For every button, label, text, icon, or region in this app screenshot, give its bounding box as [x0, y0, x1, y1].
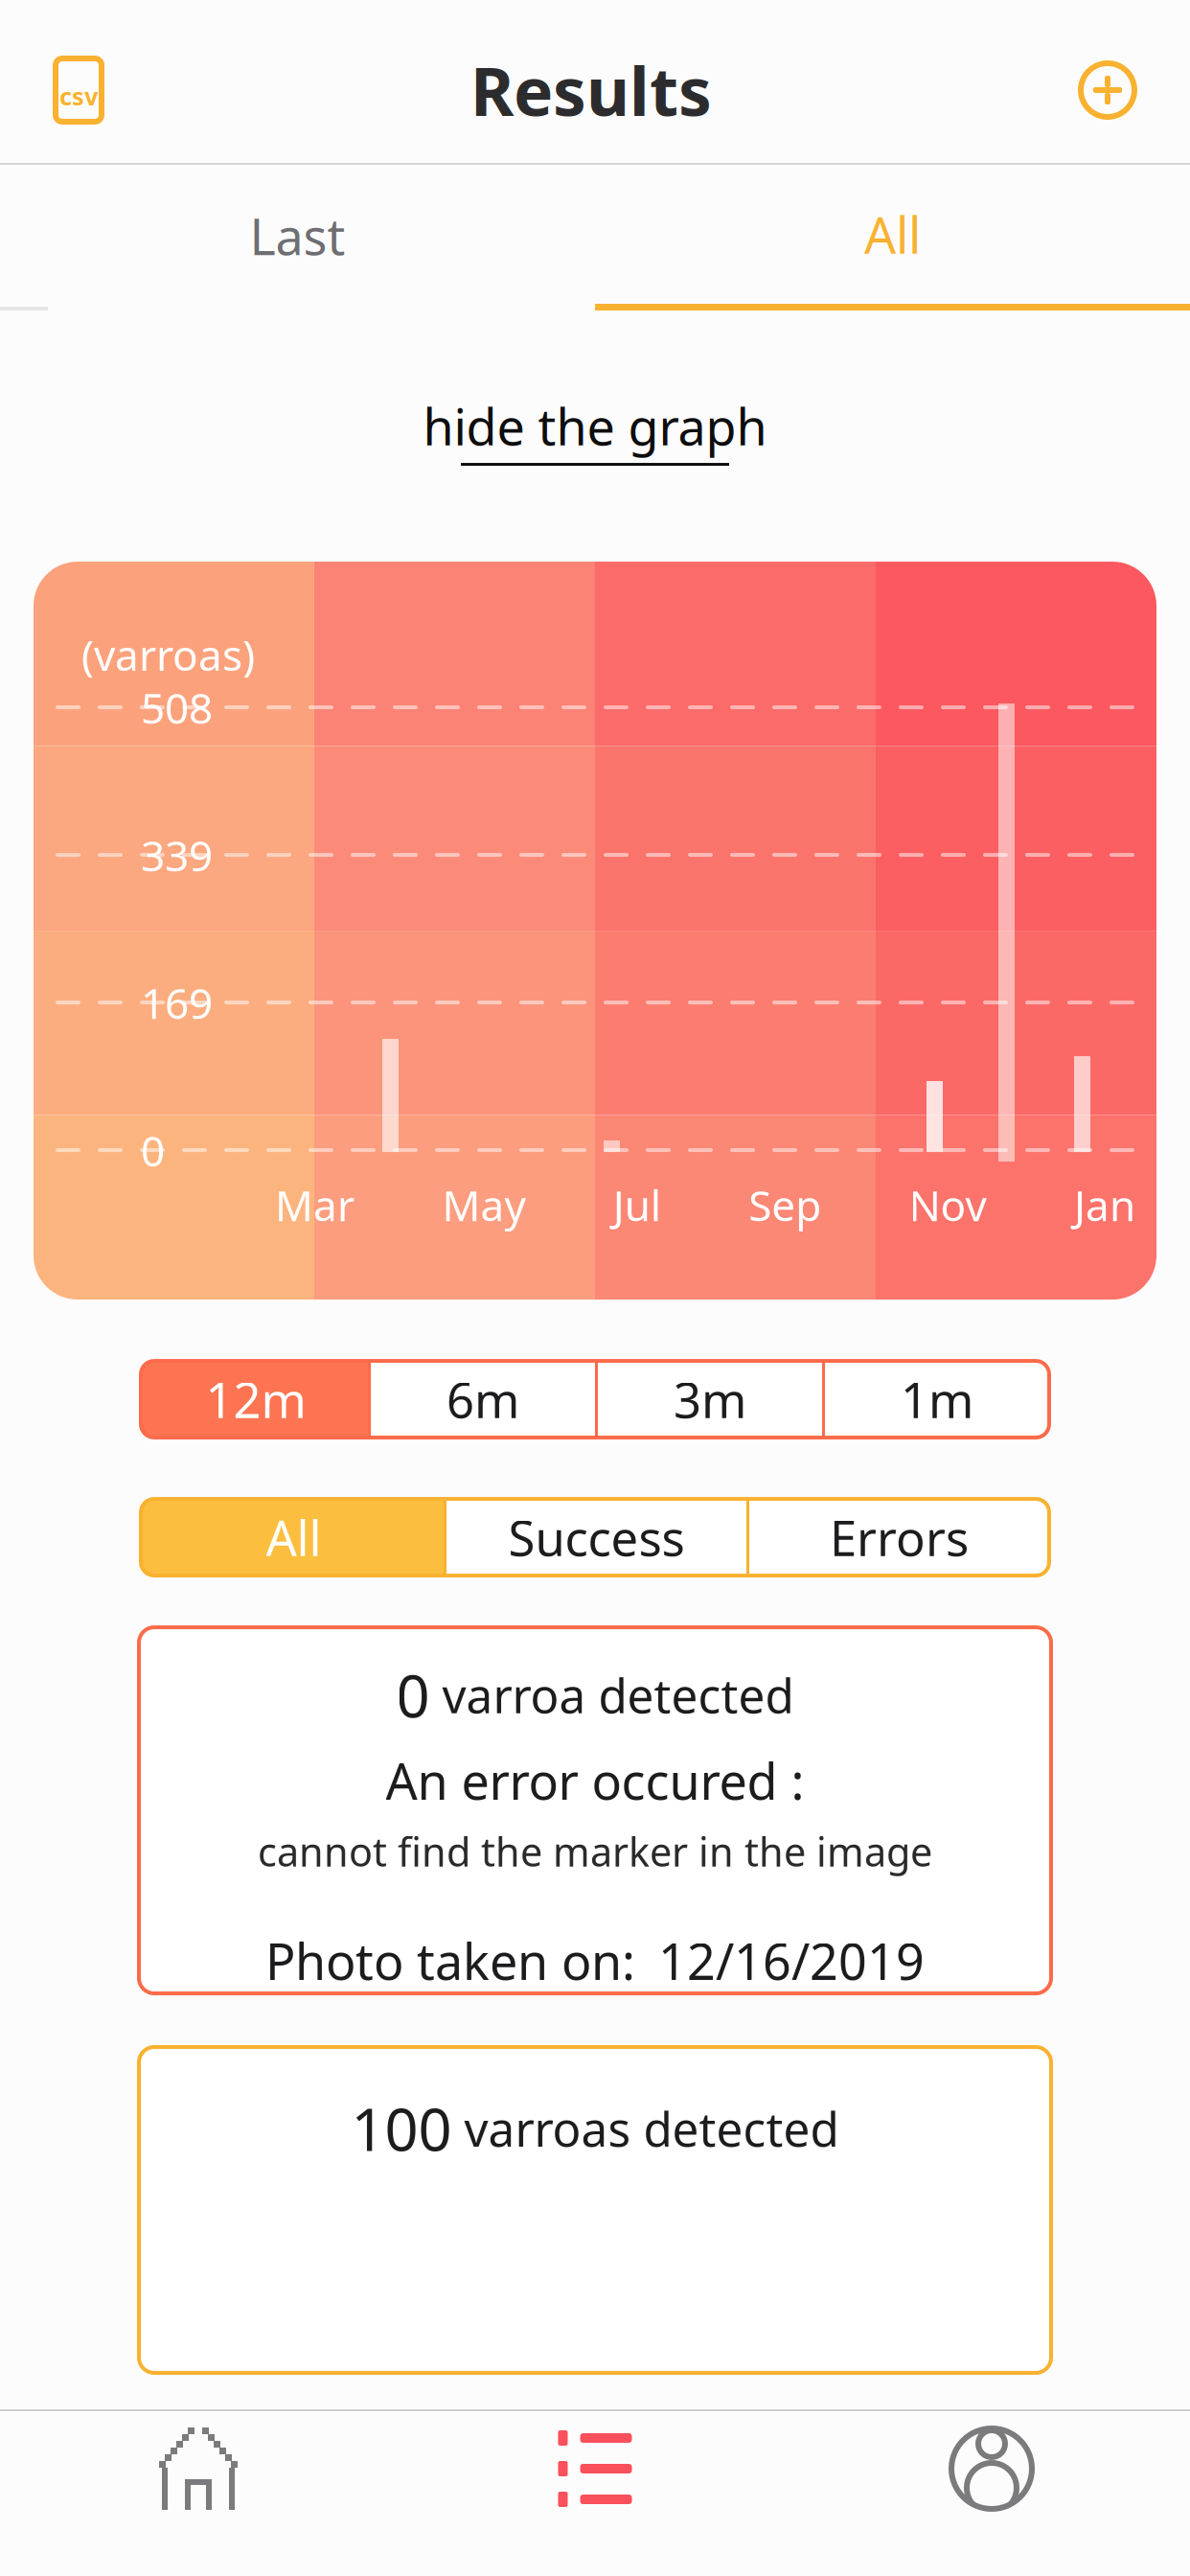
button[interactable]: Add result [1067, 52, 1148, 128]
staticText: Mar [275, 1177, 355, 1233]
button[interactable]: Errors [746, 1499, 1049, 1576]
button[interactable]: 1m [822, 1361, 1049, 1438]
staticText: 0 [141, 1122, 165, 1178]
staticText: 100 [351, 2089, 452, 2167]
staticText: All [864, 201, 921, 267]
button[interactable]: Success [444, 1499, 746, 1576]
staticText: 169 [141, 974, 213, 1030]
button[interactable]: Results [397, 2411, 793, 2526]
button[interactable]: 12m [141, 1361, 368, 1438]
staticText: hide the graph [423, 393, 767, 459]
staticText: 1m [901, 1367, 973, 1431]
button[interactable]: 6m [368, 1361, 595, 1438]
button[interactable]: 0 [139, 1627, 1051, 1993]
button[interactable]: hide the graph [412, 385, 778, 474]
staticText: Last [250, 203, 345, 269]
staticText: varroa detected [430, 1663, 794, 1726]
staticText: 6m [446, 1367, 519, 1431]
staticText: Sep [748, 1177, 821, 1233]
staticText: Errors [830, 1505, 969, 1569]
staticText: 12m [206, 1367, 306, 1431]
staticText: (varroas) [81, 626, 255, 682]
staticText: Results [470, 46, 712, 134]
button[interactable]: Last [0, 165, 595, 310]
staticText: Photo taken on: [265, 1927, 635, 1994]
staticText: 3m [674, 1367, 746, 1431]
staticText: cannot find the marker in the image [258, 1825, 932, 1878]
staticText: 339 [141, 827, 213, 883]
staticText: All [266, 1505, 321, 1569]
staticText: Success [508, 1505, 685, 1569]
staticText: May [442, 1177, 525, 1233]
button[interactable]: 100 [139, 2047, 1051, 2373]
staticText: 12/16/2019 [658, 1927, 925, 1994]
button[interactable]: 3m [595, 1361, 822, 1438]
button[interactable]: Home [0, 2411, 397, 2526]
button[interactable]: All [141, 1499, 444, 1576]
staticText: csv [59, 80, 98, 112]
staticText: Jan [1074, 1177, 1135, 1233]
staticText: Nov [909, 1177, 986, 1233]
button[interactable]: All [595, 165, 1190, 310]
staticText: 508 [141, 679, 213, 735]
staticText: 0 [396, 1656, 430, 1734]
staticText: Jul [613, 1177, 661, 1233]
staticText: An error occured : [386, 1747, 804, 1814]
staticText: varroas detected [452, 2097, 839, 2160]
button[interactable]: Profile [793, 2411, 1190, 2526]
button[interactable]: Export CSV [42, 47, 115, 133]
